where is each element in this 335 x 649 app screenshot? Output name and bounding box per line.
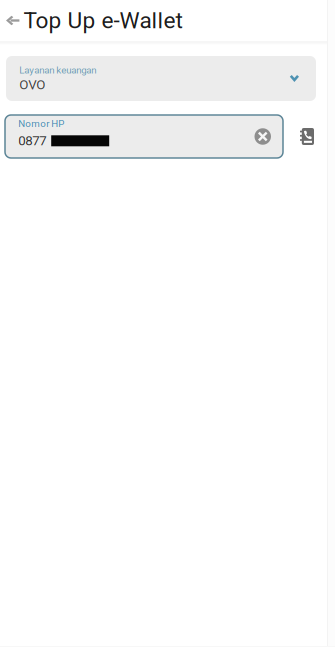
staticText: Nomor HP [18,118,64,129]
staticText: 0877 [18,133,46,149]
button[interactable]: Back [0,3,23,37]
staticText: Top Up e-Wallet [23,7,182,34]
button[interactable]: Layanan keuangan [6,56,316,101]
button[interactable]: Pick from contacts [283,128,320,145]
staticText: Layanan keuangan [19,64,96,76]
staticText: OVO [19,77,45,92]
button[interactable]: Clear text [254,128,283,145]
